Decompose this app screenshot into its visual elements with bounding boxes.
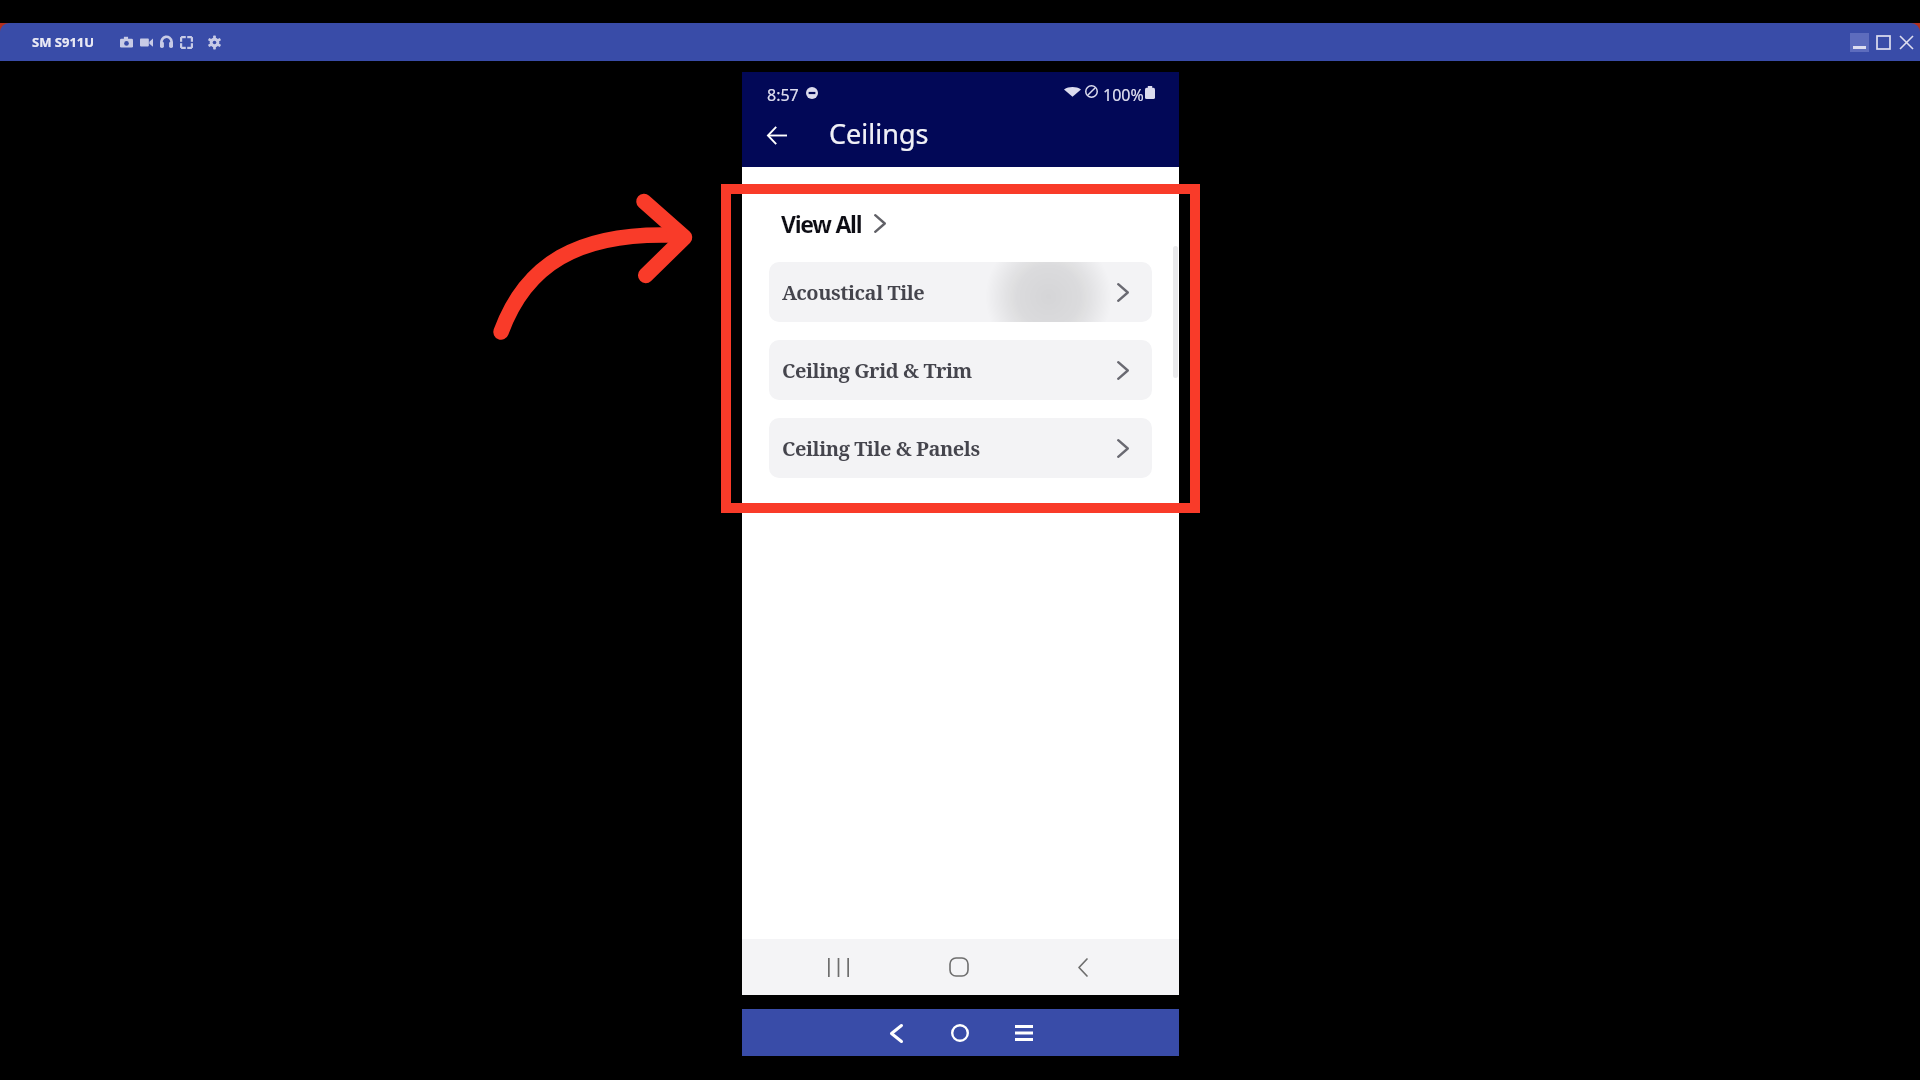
button[interactable]: Back <box>1061 945 1105 989</box>
button[interactable]: Ceiling Tile & Panels <box>769 418 1152 478</box>
button[interactable]: Minimise <box>1850 33 1869 52</box>
button[interactable]: Record <box>138 34 155 51</box>
button[interactable]: Ceiling Grid & Trim <box>769 340 1152 400</box>
button[interactable]: Home <box>938 1011 982 1055</box>
button[interactable]: Home <box>937 945 981 989</box>
staticText: Ceiling Tile & Panels <box>782 435 980 462</box>
staticText: 8:57 <box>767 84 799 106</box>
button[interactable]: Maximise <box>1870 33 1896 52</box>
staticText: 100% <box>1103 84 1144 106</box>
staticText: Ceilings <box>829 115 929 152</box>
button[interactable]: Settings <box>206 34 223 51</box>
button[interactable]: Fullscreen <box>178 34 195 51</box>
button[interactable]: Menu <box>1002 1011 1046 1055</box>
staticText: Ceiling Grid & Trim <box>782 357 972 384</box>
button[interactable]: Back <box>874 1011 918 1055</box>
button[interactable]: Screenshot <box>118 34 135 51</box>
button[interactable]: Back <box>753 111 801 159</box>
staticText: View All <box>781 208 862 239</box>
staticText: SM S911U <box>32 33 95 51</box>
button[interactable]: Close <box>1894 33 1919 52</box>
button[interactable]: View All <box>781 208 886 239</box>
button[interactable]: Acoustical Tile <box>769 262 1152 322</box>
button[interactable]: Audio <box>158 34 175 51</box>
button[interactable]: Recents <box>816 945 860 989</box>
staticText: Acoustical Tile <box>782 279 925 306</box>
